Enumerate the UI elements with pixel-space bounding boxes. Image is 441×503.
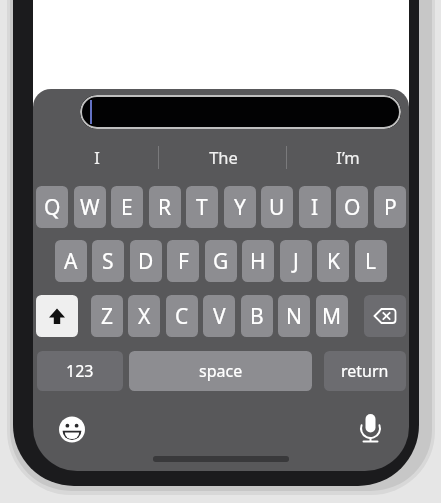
staticText: G: [213, 247, 229, 276]
button[interactable]: [36, 295, 78, 337]
button[interactable]: M: [316, 295, 348, 337]
button[interactable]: N: [278, 295, 310, 337]
staticText: O: [344, 193, 361, 222]
staticText: B: [250, 302, 264, 331]
button[interactable]: A: [55, 240, 87, 282]
button[interactable]: Y: [224, 186, 256, 228]
button[interactable]: [364, 295, 406, 337]
button[interactable]: I: [299, 186, 331, 228]
staticText: H: [250, 247, 266, 276]
staticText: M: [322, 302, 342, 331]
staticText: S: [102, 247, 114, 276]
staticText: Q: [44, 193, 61, 222]
button[interactable]: U: [261, 186, 293, 228]
staticText: 123: [66, 360, 94, 382]
staticText: I: [311, 193, 319, 222]
button[interactable]: The: [159, 137, 287, 177]
button[interactable]: O: [336, 186, 368, 228]
button[interactable]: W: [74, 186, 106, 228]
button[interactable]: D: [130, 240, 162, 282]
button[interactable]: [352, 408, 389, 445]
button[interactable]: B: [241, 295, 273, 337]
button[interactable]: E: [111, 186, 143, 228]
staticText: I: [94, 146, 100, 168]
button[interactable]: T: [186, 186, 218, 228]
staticText: W: [80, 193, 100, 222]
button[interactable]: G: [205, 240, 237, 282]
staticText: Y: [234, 193, 246, 222]
staticText: R: [158, 193, 172, 222]
button[interactable]: X: [128, 295, 160, 337]
button[interactable]: J: [280, 240, 312, 282]
button[interactable]: V: [203, 295, 235, 337]
staticText: I’m: [336, 146, 360, 168]
staticText: C: [175, 302, 189, 331]
button[interactable]: [52, 409, 92, 449]
button[interactable]: K: [317, 240, 349, 282]
staticText: The: [209, 146, 238, 168]
button[interactable]: I: [34, 137, 159, 177]
button[interactable]: I’m: [287, 137, 409, 177]
button[interactable]: Z: [91, 295, 123, 337]
button[interactable]: H: [242, 240, 274, 282]
staticText: K: [327, 247, 340, 276]
staticText: A: [64, 247, 78, 276]
staticText: Z: [101, 302, 114, 331]
button[interactable]: P: [374, 186, 406, 228]
staticText: D: [138, 247, 154, 276]
button[interactable]: 123: [37, 351, 123, 391]
button[interactable]: space: [129, 351, 312, 391]
button[interactable]: S: [92, 240, 124, 282]
button[interactable]: L: [355, 240, 387, 282]
staticText: J: [293, 247, 299, 276]
staticText: U: [269, 193, 285, 222]
button[interactable]: Q: [36, 186, 68, 228]
staticText: return: [341, 360, 389, 382]
staticText: L: [365, 247, 377, 276]
staticText: space: [199, 360, 243, 382]
staticText: P: [384, 193, 397, 222]
staticText: V: [213, 302, 226, 331]
staticText: X: [138, 302, 151, 331]
staticText: E: [121, 193, 133, 222]
button[interactable]: R: [149, 186, 181, 228]
button[interactable]: return: [324, 351, 406, 391]
staticText: T: [196, 193, 208, 222]
button[interactable]: C: [166, 295, 198, 337]
staticText: N: [286, 302, 302, 331]
button[interactable]: [80, 95, 401, 129]
staticText: F: [178, 247, 189, 276]
button[interactable]: F: [167, 240, 199, 282]
